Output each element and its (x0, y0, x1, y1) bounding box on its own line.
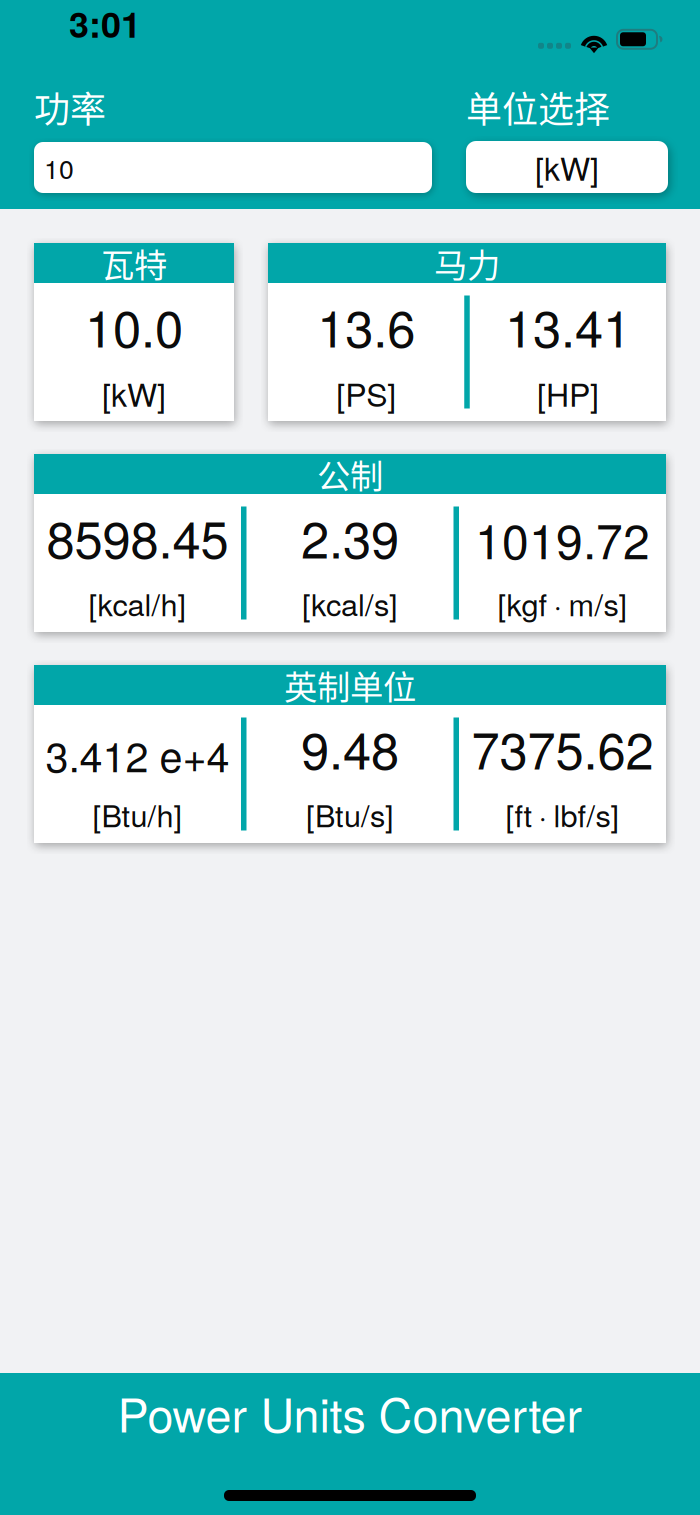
staticText: 9.48 (301, 711, 399, 784)
staticText: 7375.62 (471, 711, 653, 784)
staticText: 3.412 e+4 (45, 725, 229, 784)
staticText: 10 (44, 148, 74, 187)
staticText: 功率 (34, 81, 106, 133)
staticText: [ft · lbf/s] (505, 792, 619, 836)
staticText: 1019.72 (475, 504, 650, 573)
staticText: 13.6 (317, 289, 415, 362)
staticText: [kcal/s] (302, 581, 398, 625)
staticText: [HP] (537, 370, 599, 416)
button[interactable]: [kW] (466, 141, 668, 193)
staticText: [PS] (336, 370, 396, 416)
button[interactable]: 10 (34, 142, 432, 193)
staticText: 13.41 (505, 289, 631, 362)
staticText: [kW] (102, 370, 166, 416)
staticText: 马力 (434, 239, 500, 287)
staticText: [kcal/h] (88, 581, 186, 625)
staticText: 公制 (317, 450, 383, 498)
staticText: 2.39 (301, 500, 399, 573)
staticText: 单位选择 (466, 81, 610, 133)
staticText: [kW] (535, 144, 599, 190)
staticText: [Btu/h] (92, 792, 182, 836)
staticText: 英制单位 (284, 661, 416, 709)
staticText: 8598.45 (46, 500, 228, 573)
staticText: 瓦特 (101, 239, 167, 287)
staticText: Power Units Converter (117, 1379, 582, 1446)
staticText: [Btu/s] (306, 792, 394, 836)
staticText: 10.0 (85, 289, 183, 362)
staticText: [kgf · m/s] (497, 581, 627, 625)
staticText: 3:01 (69, 0, 141, 49)
